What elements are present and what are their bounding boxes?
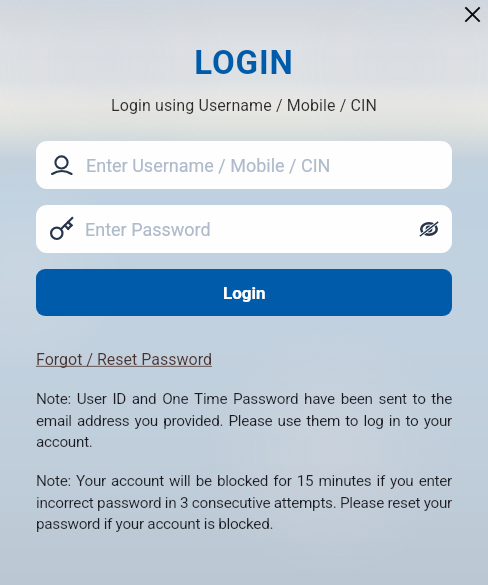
staticText: Login: [223, 283, 266, 303]
button[interactable]: Enter Username / Mobile / CIN: [36, 141, 452, 189]
staticText: Note: Your account will be blocked for 1…: [36, 472, 452, 532]
button[interactable]: Enter Password: [36, 205, 452, 253]
staticText: Note: User ID and One Time Password have…: [36, 390, 452, 450]
staticText: Forgot / Reset Password: [36, 350, 212, 369]
staticText: Enter Password: [85, 219, 211, 240]
staticText: Enter Username / Mobile / CIN: [86, 155, 331, 176]
button[interactable]: Forgot / Reset Password: [36, 350, 212, 369]
button[interactable]: Close: [456, 0, 488, 28]
button[interactable]: Show password: [408, 208, 450, 250]
button[interactable]: Login: [36, 269, 452, 316]
staticText: Login using Username / Mobile / CIN: [0, 96, 488, 115]
staticText: LOGIN: [0, 43, 488, 82]
